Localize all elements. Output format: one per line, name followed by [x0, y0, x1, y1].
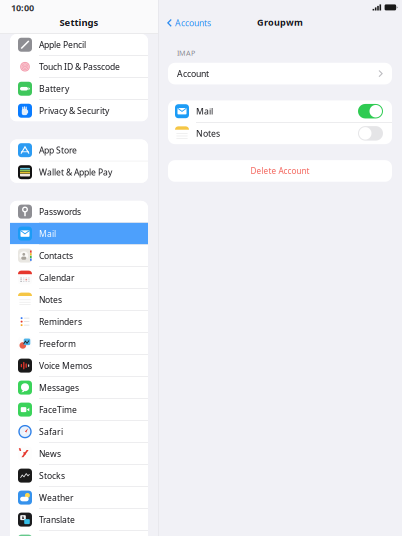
button[interactable]: Mail	[10, 223, 148, 244]
staticText: News	[39, 448, 61, 459]
button[interactable]: Reminders	[10, 311, 148, 332]
staticText: Accounts	[175, 17, 211, 29]
staticText: Weather	[39, 492, 74, 503]
staticText: Voice Memos	[39, 360, 92, 371]
button[interactable]: Freeform	[10, 333, 148, 354]
button[interactable]: Passwords	[10, 201, 148, 222]
staticText: Messages	[39, 382, 79, 393]
staticText: IMAP	[177, 48, 195, 58]
staticText: A	[21, 515, 24, 520]
staticText: Translate	[39, 514, 75, 525]
button[interactable]: Privacy & Security	[10, 100, 148, 121]
staticText: Notes	[39, 294, 62, 305]
button[interactable]: App Store	[10, 139, 148, 161]
staticText: Mail	[196, 105, 213, 117]
staticText: Account	[177, 68, 209, 79]
staticText: Settings	[59, 16, 98, 29]
button[interactable]: Contacts	[10, 245, 148, 266]
staticText: Notes	[196, 127, 220, 139]
button[interactable]: Account	[168, 63, 392, 84]
button[interactable]: Weather	[10, 487, 148, 508]
button[interactable]: FaceTime	[10, 399, 148, 420]
staticText: Contacts	[39, 250, 73, 261]
staticText: Groupwm	[257, 16, 303, 28]
staticText: 10:00	[11, 1, 34, 14]
staticText: App Store	[39, 144, 77, 156]
staticText: Safari	[39, 426, 63, 437]
button[interactable]: Touch ID & Passcode	[10, 56, 148, 77]
button[interactable]: Mail toggle	[358, 104, 383, 118]
staticText: Privacy & Security	[39, 105, 109, 116]
staticText: Battery	[39, 83, 69, 94]
staticText: Stocks	[39, 470, 65, 481]
staticText: FaceTime	[39, 404, 77, 415]
button[interactable]: Apple Pencil	[10, 34, 148, 55]
button[interactable]: Safari	[10, 421, 148, 442]
staticText: Touch ID & Passcode	[39, 61, 120, 72]
staticText: Passwords	[39, 206, 81, 217]
button[interactable]: Accounts	[158, 14, 211, 32]
staticText: Delete Account	[250, 165, 309, 176]
button[interactable]: Messages	[10, 377, 148, 398]
button[interactable]: Stocks	[10, 465, 148, 486]
button[interactable]: Notes	[10, 289, 148, 310]
button[interactable]: A	[10, 509, 148, 530]
button[interactable]: Wallet & Apple Pay	[10, 161, 148, 183]
button[interactable]: Voice Memos	[10, 355, 148, 376]
button[interactable]: Battery	[10, 78, 148, 99]
staticText: Wallet & Apple Pay	[39, 166, 112, 178]
button[interactable]: Calendar	[10, 267, 148, 288]
staticText: Apple Pencil	[39, 39, 86, 50]
button[interactable]: Delete Account	[168, 160, 392, 182]
staticText: Mail	[39, 228, 56, 239]
button[interactable]: Maps	[10, 531, 148, 536]
button[interactable]: News	[10, 443, 148, 464]
button[interactable]: Notes toggle	[358, 126, 383, 141]
staticText: Reminders	[39, 316, 82, 327]
staticText: Calendar	[39, 272, 75, 283]
staticText: Freeform	[39, 338, 76, 349]
